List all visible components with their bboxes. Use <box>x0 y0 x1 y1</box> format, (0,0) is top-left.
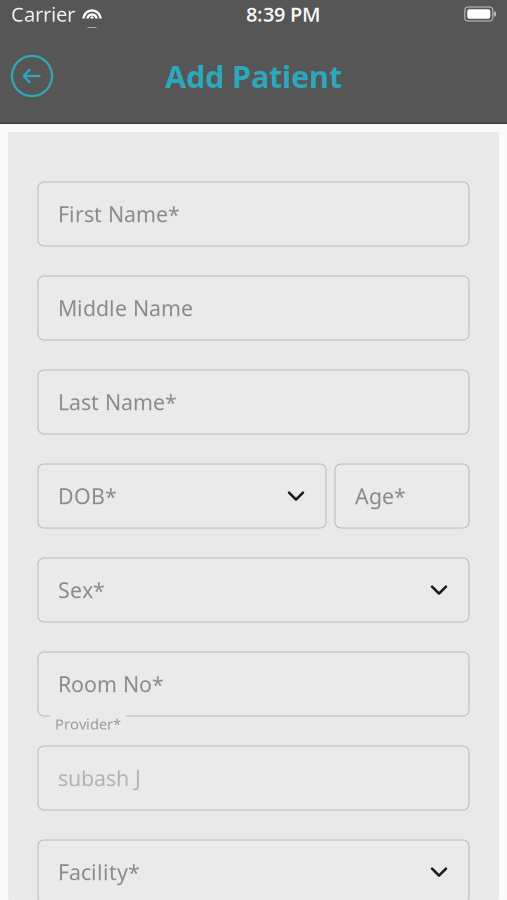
button[interactable]: First Name* <box>38 182 469 246</box>
button[interactable]: Age* <box>335 464 469 528</box>
staticText: Carrier <box>11 1 75 27</box>
button[interactable]: subash J <box>38 746 469 810</box>
button[interactable]: Last Name* <box>38 370 469 434</box>
staticText: Add Patient <box>165 56 342 96</box>
staticText: subash J <box>58 764 141 792</box>
staticText: Age* <box>355 482 406 510</box>
staticText: First Name* <box>58 200 180 228</box>
staticText: Facility* <box>58 858 140 886</box>
staticText: Last Name* <box>58 388 177 416</box>
staticText: Middle Name <box>58 294 193 322</box>
button[interactable]: Middle Name <box>38 276 469 340</box>
staticText: DOB* <box>58 482 117 510</box>
staticText: Provider* <box>55 714 121 733</box>
staticText: 8:39 PM <box>246 1 321 27</box>
button[interactable]: Facility* <box>38 840 469 900</box>
staticText: Room No* <box>58 670 164 698</box>
button[interactable]: DOB* <box>38 464 326 528</box>
button[interactable]: Back <box>0 42 60 110</box>
button[interactable]: Sex* <box>38 558 469 622</box>
staticText: Sex* <box>58 576 105 604</box>
button[interactable]: Room No* <box>38 652 469 716</box>
